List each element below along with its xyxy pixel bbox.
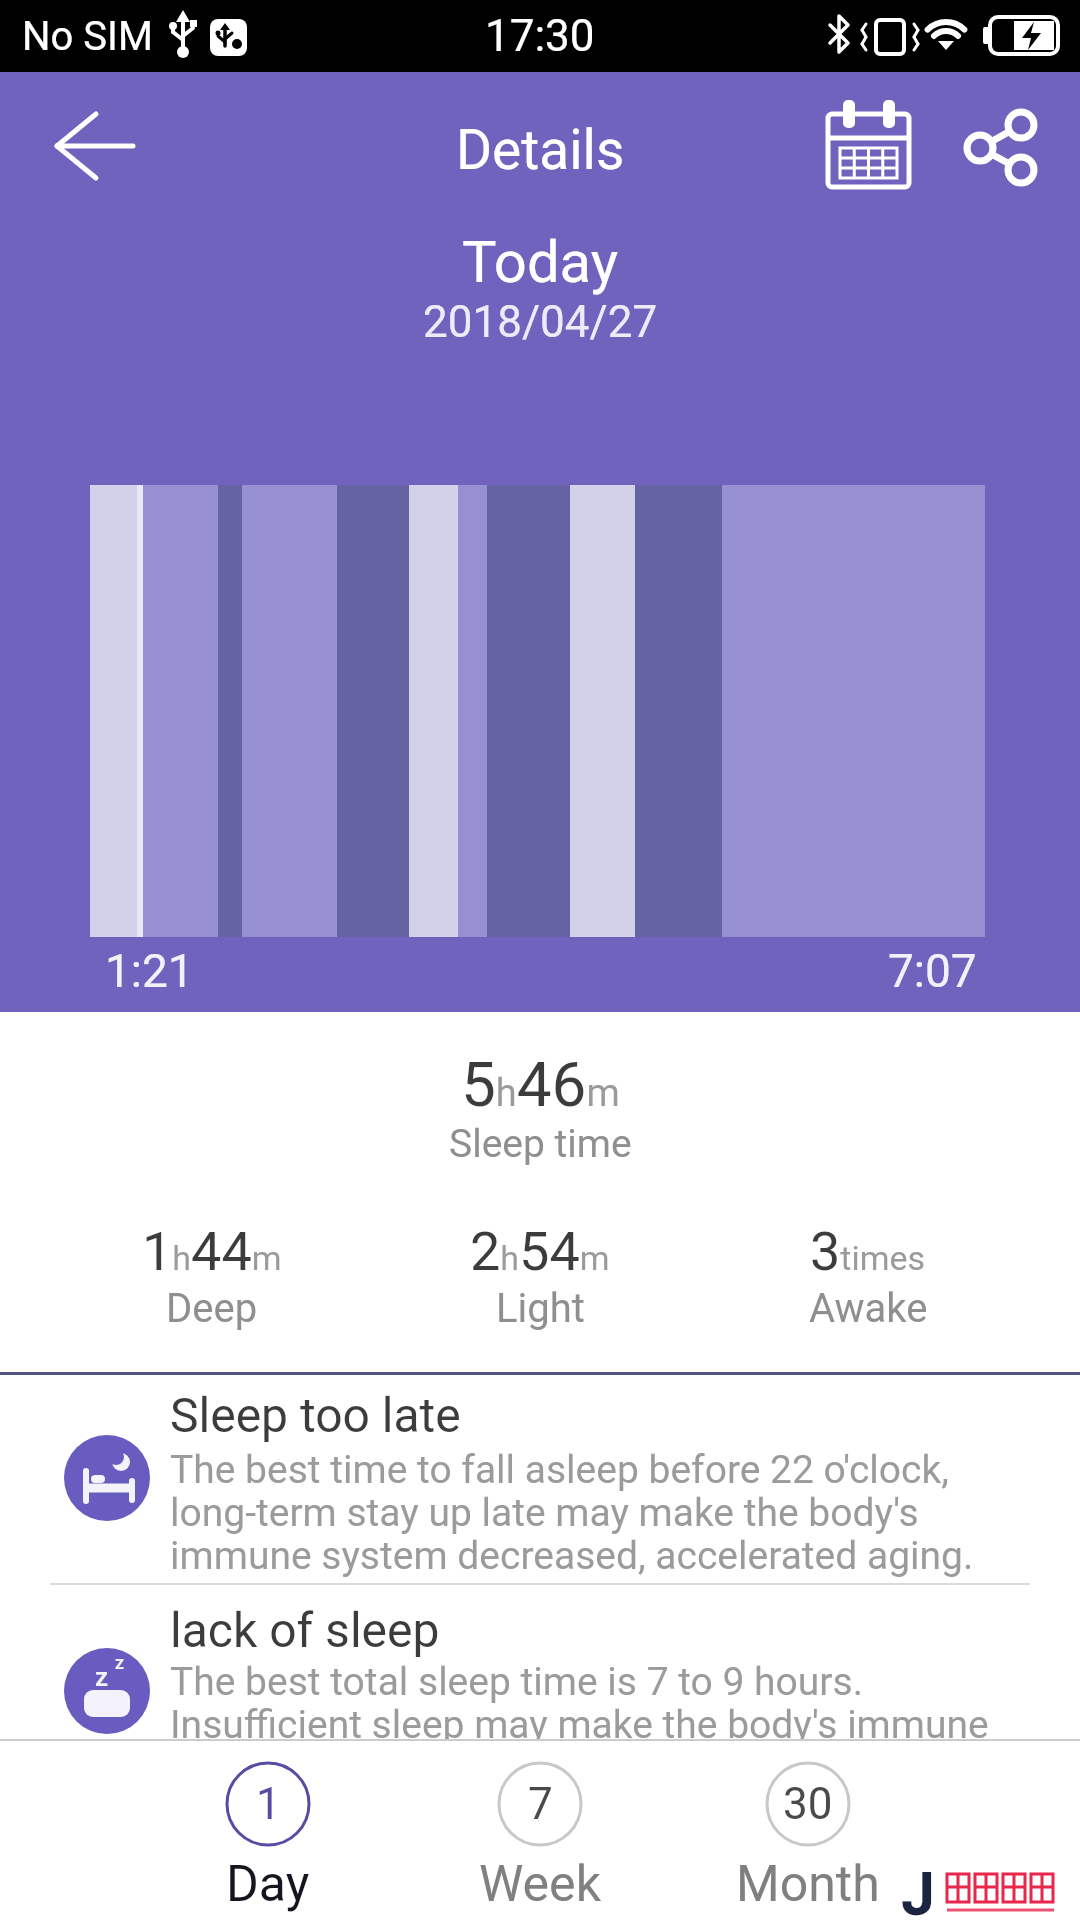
button[interactable]: 30 (708, 1749, 908, 1914)
staticText: 7 (528, 1778, 553, 1830)
staticText: 7:07 (888, 944, 977, 998)
button[interactable] (955, 100, 1050, 195)
button[interactable] (812, 92, 924, 202)
staticText: z (95, 1662, 109, 1692)
staticText: 1h44m (142, 1220, 282, 1283)
staticText: Week (479, 1855, 601, 1914)
staticText: 3times (810, 1220, 926, 1283)
staticText: Month (736, 1855, 880, 1914)
staticText: 2018/04/27 (423, 296, 658, 348)
staticText: Insufficient sleep may make the body's i… (170, 1702, 989, 1748)
staticText: Today (462, 228, 619, 296)
staticText: 30 (783, 1778, 833, 1830)
staticText: Day (226, 1855, 310, 1914)
staticText: immune system decreased, accelerated agi… (170, 1533, 974, 1579)
staticText: The best time to fall asleep before 22 o… (170, 1447, 949, 1493)
staticText: Details (456, 118, 625, 182)
button[interactable] (40, 100, 150, 195)
staticText: Awake (809, 1285, 928, 1332)
staticText: 2h54m (470, 1220, 610, 1283)
staticText: lack of sleep (170, 1602, 440, 1658)
staticText: 17:30 (485, 10, 595, 62)
staticText: 1 (256, 1778, 281, 1830)
button[interactable]: 7 (440, 1749, 640, 1914)
staticText: Sleep too late (170, 1387, 461, 1443)
staticText: The best total sleep time is 7 to 9 hour… (170, 1659, 863, 1705)
staticText: z (115, 1652, 125, 1673)
staticText: 5h46m (461, 1048, 620, 1121)
staticText: Light (496, 1285, 585, 1332)
staticText: 1:21 (105, 944, 194, 998)
staticText: Deep (166, 1285, 258, 1332)
staticText: long-term stay up late may make the body… (170, 1490, 919, 1536)
staticText: Sleep time (449, 1121, 632, 1167)
staticText: No SIM (22, 13, 153, 60)
staticText: J (902, 1860, 935, 1920)
button[interactable]: 1 (168, 1749, 368, 1914)
